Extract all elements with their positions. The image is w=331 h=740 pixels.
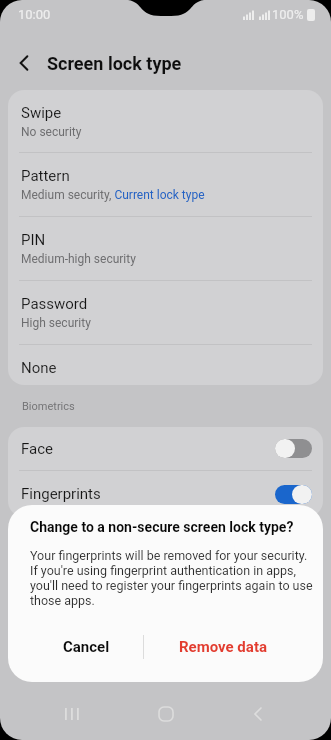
staticText: Your fingerprints will be removed for yo… xyxy=(30,548,313,608)
staticText: Face xyxy=(21,440,54,458)
staticText: Cancel xyxy=(63,638,110,656)
staticText: Screen lock type xyxy=(47,53,182,74)
staticText: Remove data xyxy=(179,638,267,656)
button[interactable] xyxy=(10,49,38,77)
staticText: Fingerprints xyxy=(21,485,101,503)
staticText: Medium security, Current lock type xyxy=(21,188,205,202)
staticText: Change to a non-secure screen lock type? xyxy=(30,519,294,535)
staticText: Biometrics xyxy=(22,400,75,413)
button[interactable] xyxy=(155,703,177,725)
button[interactable] xyxy=(247,703,269,725)
staticText: Medium-high security xyxy=(21,252,136,266)
button[interactable]: Swipe xyxy=(8,90,323,152)
button[interactable]: Remove data xyxy=(164,629,282,665)
button[interactable]: Face xyxy=(8,427,323,470)
button[interactable]: Cancel xyxy=(38,629,134,665)
staticText: No security xyxy=(21,125,82,139)
staticText: None xyxy=(21,359,57,377)
button[interactable]: Password xyxy=(8,281,323,344)
button[interactable]: Pattern xyxy=(8,153,323,216)
staticText: 10:00 xyxy=(18,7,51,22)
button[interactable]: PIN xyxy=(8,217,323,280)
staticText: High security xyxy=(21,316,91,330)
staticText: Swipe xyxy=(21,104,62,122)
staticText: 100% xyxy=(272,7,304,22)
button[interactable] xyxy=(62,703,84,725)
button[interactable]: Fingerprints xyxy=(8,471,323,517)
staticText: PIN xyxy=(21,231,46,249)
staticText: Password xyxy=(21,295,88,313)
button[interactable]: None xyxy=(8,345,323,385)
staticText: Pattern xyxy=(21,167,70,185)
